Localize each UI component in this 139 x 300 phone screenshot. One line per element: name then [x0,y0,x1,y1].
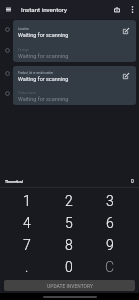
staticText: Instant inventory [21,6,67,13]
button[interactable]: Open navigation menu [0,0,21,19]
button[interactable]: Product, lot or serial number [13,66,136,105]
button[interactable]: 7 [6,234,48,256]
staticText: Theoretical [5,180,23,184]
staticText: Product, lot or serial number [18,71,54,74]
button[interactable]: More options [125,0,139,19]
staticText: 9 [106,237,114,253]
staticText: 0 [131,179,134,185]
staticText: 1 [23,193,31,209]
staticText: Package [18,48,29,51]
staticText: UPDATE INVENTORY [47,283,93,289]
staticText: 7 [23,237,31,253]
staticText: 5 [65,215,73,231]
button[interactable]: 6 [89,212,130,234]
button[interactable]: 1 [6,190,48,212]
button[interactable]: 9 [89,234,130,256]
button[interactable]: C [89,256,130,278]
staticText: Waiting for scanning [18,76,69,82]
staticText: 4 [23,215,31,231]
staticText: 8 [65,237,73,253]
button[interactable]: . [6,256,48,278]
button[interactable]: 4 [6,212,48,234]
button[interactable]: Location [13,20,136,62]
button[interactable]: Scan with camera [108,0,125,19]
staticText: Waiting for scanning [18,32,69,38]
staticText: Waiting for scanning [18,96,69,102]
staticText: Waiting for scanning [18,53,69,59]
button[interactable]: 2 [48,190,89,212]
staticText: Product owner [18,91,37,94]
button[interactable]: UPDATE INVENTORY [4,280,135,291]
button[interactable]: Edit [120,25,132,37]
button[interactable]: 3 [89,190,130,212]
button[interactable]: 8 [48,234,89,256]
staticText: Location [18,27,29,30]
staticText: 6 [106,215,114,231]
staticText: 0 [65,259,73,275]
staticText: . [25,259,29,275]
button[interactable]: 0 [48,256,89,278]
staticText: 3 [106,193,114,209]
staticText: C [105,259,115,275]
staticText: 2 [65,193,73,209]
button[interactable]: 5 [48,212,89,234]
button[interactable]: Edit [120,70,132,82]
